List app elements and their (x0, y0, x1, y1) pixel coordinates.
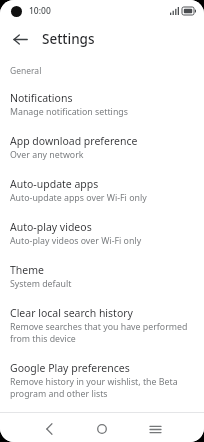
staticText: Settings (42, 30, 95, 48)
staticText: Manage notification settings (10, 106, 128, 118)
staticText: General (10, 65, 42, 77)
button[interactable]: Clear local search history (0, 298, 204, 353)
staticText: Auto-update apps over Wi-Fi only (10, 192, 147, 204)
button[interactable]: Theme (0, 255, 204, 298)
button[interactable]: Recent apps (140, 416, 170, 442)
staticText: 10:00 (29, 5, 51, 17)
staticText: Auto-play videos (10, 220, 92, 234)
button[interactable]: Notifications (0, 83, 204, 126)
button[interactable]: Home (87, 416, 117, 442)
staticText: Theme (10, 263, 44, 277)
button[interactable]: Auto-play videos (0, 212, 204, 255)
button[interactable]: Google Play preferences (0, 353, 204, 408)
staticText: Auto-play videos over Wi-Fi only (10, 235, 142, 247)
button[interactable]: Back (6, 25, 34, 53)
button[interactable]: Back (34, 416, 64, 442)
staticText: Auto-update apps (10, 177, 99, 191)
staticText: Remove searches that you have performed … (10, 321, 192, 345)
staticText: Google Play preferences (10, 361, 130, 375)
staticText: Clear local search history (10, 306, 133, 320)
staticText: Over any network (10, 149, 84, 161)
staticText: App download preference (10, 134, 138, 148)
button[interactable]: App download preference (0, 126, 204, 169)
button[interactable]: Auto-update apps (0, 169, 204, 212)
staticText: System default (10, 278, 72, 290)
staticText: Notifications (10, 91, 73, 105)
staticText: Remove history in your wishlist, the Bet… (10, 376, 192, 400)
